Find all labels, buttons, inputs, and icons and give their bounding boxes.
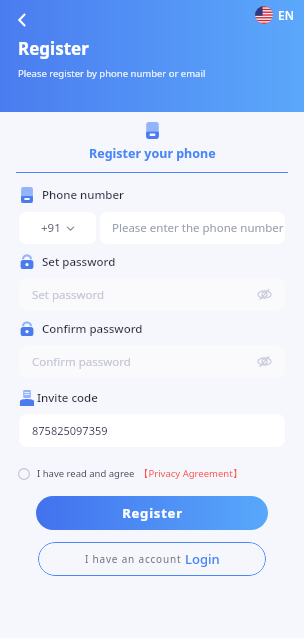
button[interactable]: Confirm password	[19, 345, 285, 378]
staticText: 875825097359	[32, 423, 108, 438]
button[interactable]: I have an account	[38, 542, 266, 576]
button[interactable]: 875825097359	[19, 414, 285, 447]
staticText: Set password	[32, 287, 257, 303]
staticText: Register your phone	[89, 145, 216, 162]
button[interactable]: Back	[8, 6, 36, 34]
button[interactable]: EN	[255, 6, 294, 24]
staticText: 【Privacy Agreement】	[139, 467, 243, 480]
button[interactable]: Register your phone	[65, 120, 240, 164]
staticText: Register	[18, 37, 89, 60]
staticText: Confirm password	[32, 354, 257, 370]
staticText: Login	[185, 550, 220, 568]
button[interactable]: Show password	[257, 354, 272, 369]
staticText: I have an account	[85, 552, 185, 566]
button[interactable]: +91	[19, 212, 96, 244]
staticText: Confirm password	[42, 321, 143, 337]
button[interactable]: I have read and agree	[18, 467, 243, 480]
staticText: Set password	[42, 254, 116, 270]
button[interactable]: Set password	[19, 278, 285, 311]
staticText: Please enter the phone number	[112, 220, 284, 236]
button[interactable]: Register	[36, 496, 268, 530]
staticText: Please register by phone number or email	[18, 67, 206, 80]
staticText: I have read and agree	[37, 467, 135, 480]
staticText: Invite code	[37, 390, 98, 406]
staticText: EN	[278, 7, 294, 23]
staticText: Phone number	[42, 187, 124, 203]
button[interactable]: Please enter the phone number	[100, 212, 285, 244]
button[interactable]: Show password	[257, 287, 272, 302]
staticText: Register	[122, 504, 183, 522]
staticText: +91	[41, 220, 61, 236]
